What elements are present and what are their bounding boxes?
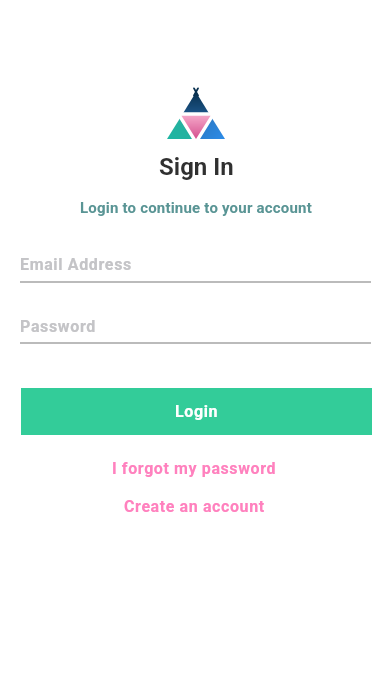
button[interactable]: Password <box>20 308 371 344</box>
staticText: Create an account <box>124 497 265 516</box>
staticText: I forgot my password <box>112 459 277 478</box>
other: App logo <box>167 87 225 139</box>
button[interactable]: Login <box>21 388 372 435</box>
button[interactable]: Create an account <box>110 492 279 521</box>
staticText: Password <box>20 317 96 336</box>
staticText: Email Address <box>20 255 132 274</box>
staticText: Login to continue to your account <box>80 199 312 217</box>
button[interactable]: Email Address <box>20 246 371 283</box>
staticText: Sign In <box>159 153 234 181</box>
staticText: Login <box>175 402 219 421</box>
button[interactable]: I forgot my password <box>98 454 291 483</box>
